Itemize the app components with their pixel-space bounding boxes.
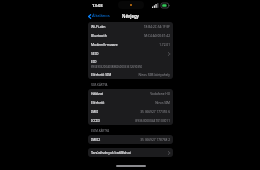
staticText: Névjegy	[122, 13, 139, 19]
staticText: 8936300004470103011	[135, 119, 170, 123]
staticText: 89049032004008882600033612690350	[91, 65, 143, 69]
button[interactable]: SEID	[88, 49, 173, 58]
staticText: IMEI	[91, 109, 99, 114]
button[interactable]: Hálózat	[88, 89, 173, 98]
staticText: 35 366927 178768 2	[140, 138, 170, 142]
button[interactable]: ICCID	[88, 116, 173, 125]
staticText: SIM-KÁRTYA	[91, 83, 108, 87]
staticText: EID	[91, 59, 97, 64]
staticText: IMEI2	[91, 137, 101, 142]
button[interactable]: Általános	[85, 12, 113, 20]
staticText: Tanúsítványok beállításai	[91, 150, 131, 155]
button[interactable]: Modemfirmware	[88, 40, 173, 49]
staticText: Vodafone HU	[150, 92, 170, 96]
staticText: Hálózat	[91, 91, 104, 96]
staticText: Elérhető	[91, 100, 105, 105]
staticText: 35 366927 177355 6	[140, 110, 170, 114]
staticText: Bluetooth	[91, 33, 107, 38]
staticText: Elérhető SIM	[91, 72, 112, 77]
staticText: 13:03	[92, 3, 103, 9]
other: Home indicator	[85, 163, 176, 170]
staticText: SEID	[91, 51, 99, 56]
staticText: 1.72.01	[159, 43, 170, 47]
button[interactable]: Wi-Fi-cím	[88, 22, 173, 31]
button[interactable]: Elérhető	[88, 98, 173, 107]
staticText: Általános	[92, 13, 110, 19]
staticText: M:C4:A0:00:E1:42	[144, 34, 170, 38]
button[interactable]: Tanúsítványok beállításai	[88, 148, 173, 157]
staticText: 18:B4:2C:54:1F:9F	[143, 25, 170, 29]
button[interactable]: EID	[88, 58, 173, 70]
staticText: ESIM-KÁRTYA	[91, 129, 110, 133]
staticText: Nincs SIM-kártyahely	[138, 73, 170, 77]
button[interactable]: Elérhető SIM	[88, 70, 173, 79]
staticText: Modemfirmware	[91, 42, 118, 47]
staticText: ICCID	[91, 118, 100, 123]
button[interactable]: IMEI	[88, 107, 173, 116]
button[interactable]: IMEI2	[88, 135, 173, 144]
staticText: Wi-Fi-cím	[91, 24, 106, 29]
button[interactable]: Bluetooth	[88, 31, 173, 40]
staticText: Nincs SIM	[155, 101, 170, 105]
